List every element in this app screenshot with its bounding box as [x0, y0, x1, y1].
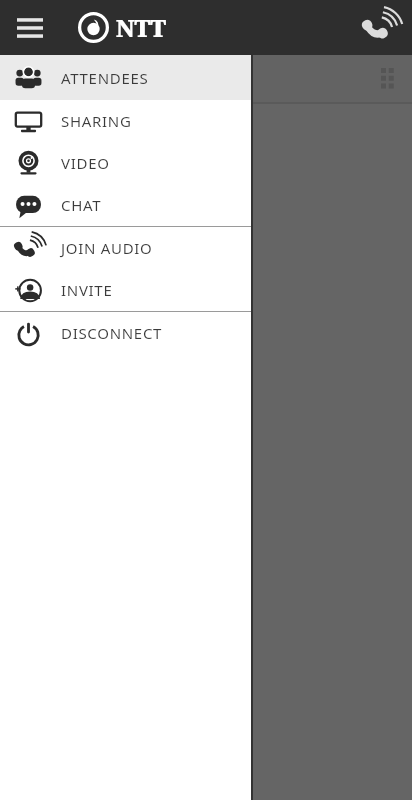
button[interactable]: VIDEO — [0, 142, 251, 184]
staticText: ATTENDEES — [61, 68, 149, 88]
button[interactable]: SHARING — [0, 100, 251, 142]
staticText: VIDEO — [61, 153, 110, 173]
staticText: CHAT — [61, 195, 102, 215]
button[interactable]: Call — [356, 4, 404, 52]
button[interactable]: INVITE — [0, 269, 251, 311]
staticText: JOIN AUDIO — [61, 238, 153, 258]
staticText: SHARING — [61, 111, 132, 131]
staticText: NTT — [116, 12, 166, 43]
button[interactable]: JOIN AUDIO — [0, 227, 251, 269]
staticText: INVITE — [61, 280, 113, 300]
button[interactable]: CHAT — [0, 184, 251, 226]
button[interactable]: ATTENDEES — [0, 55, 251, 100]
button[interactable]: DISCONNECT — [0, 312, 251, 354]
staticText: DISCONNECT — [61, 323, 163, 343]
button[interactable]: Open menu — [8, 6, 52, 50]
